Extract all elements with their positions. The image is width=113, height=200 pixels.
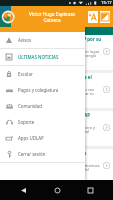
staticText: Comunidad (18, 103, 42, 109)
button[interactable]: Escolar (0, 66, 85, 82)
staticText: 15:17 (101, 0, 112, 6)
button[interactable]: Inicia el periodo de inscripciones para … (0, 73, 113, 108)
button[interactable]: Open article (103, 124, 110, 131)
button[interactable]: Reconocen a estudiantes de la UDLAP por … (0, 35, 113, 70)
button[interactable]: Increase font size (88, 11, 98, 23)
staticText: Becas y apoyos financieros de la UDLAP ¡… (4, 112, 101, 123)
button[interactable]: Change theme (100, 11, 110, 23)
button[interactable]: Open article (103, 48, 110, 55)
staticText: Víctor Hugo Espinoza (29, 11, 75, 17)
button[interactable]: Open article (103, 162, 110, 169)
button[interactable]: Becas y apoyos financieros de la UDLAP ¡… (0, 111, 113, 146)
button[interactable]: Profile (0, 6, 15, 27)
button[interactable]: ÚLTIMAS NOTICIAS (0, 49, 85, 65)
button[interactable]: Apps UDLAP (0, 130, 85, 146)
button[interactable]: Open article (103, 86, 110, 93)
staticText: Revisa los nuevos programas de apoyo fin… (4, 125, 101, 138)
staticText: Cabrera (43, 17, 61, 23)
button[interactable]: Conferencia magistral: Los retos de la c… (0, 149, 113, 184)
staticText: Soporte (18, 119, 35, 125)
staticText: ÚLTIMAS NOTICIAS (18, 54, 59, 60)
button[interactable]: Cerrar sesión (0, 146, 85, 162)
staticText: Pagos y colegiatura (18, 87, 59, 93)
staticText: Reconocen a estudiantes de la UDLAP por … (4, 36, 101, 47)
button[interactable]: Comunidad (0, 98, 85, 114)
button[interactable]: Home (46, 180, 68, 200)
button[interactable]: Recent apps (79, 180, 101, 200)
staticText: Inicia el periodo de inscripciones para … (4, 74, 101, 85)
staticText: El Dr. Pérez compartió su experiencia co… (4, 163, 101, 176)
button[interactable]: Soporte (0, 114, 85, 130)
button[interactable]: Back (12, 180, 34, 200)
button[interactable]: Avisos (0, 32, 85, 48)
staticText: Cerrar sesión (18, 151, 46, 157)
staticText: Los alumnos de Ingeniería obtuvieron el … (4, 49, 101, 62)
button[interactable]: Pagos y colegiatura (0, 82, 85, 98)
staticText: Escolar (18, 71, 33, 77)
staticText: Apps UDLAP (18, 135, 44, 141)
staticText: Consulta en el portal las fechas y los r… (4, 87, 101, 100)
staticText: Avisos (18, 37, 32, 43)
staticText: Conferencia magistral: Los retos de la c… (4, 150, 101, 161)
